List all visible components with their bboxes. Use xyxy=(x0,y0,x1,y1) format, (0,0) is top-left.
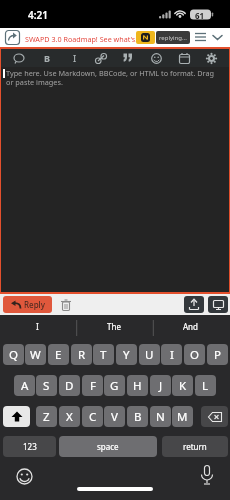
button[interactable]: R xyxy=(71,344,92,365)
button[interactable]: D xyxy=(59,375,80,396)
staticText: S xyxy=(43,378,50,394)
staticText: E xyxy=(55,347,62,363)
staticText: P xyxy=(214,347,221,363)
staticText: T xyxy=(100,347,107,363)
staticText: The xyxy=(107,321,121,332)
staticText: space xyxy=(97,441,119,452)
staticText: V xyxy=(111,409,118,425)
button[interactable] xyxy=(123,53,133,63)
button[interactable] xyxy=(200,465,214,486)
staticText: C xyxy=(89,409,97,425)
button[interactable] xyxy=(61,299,71,311)
staticText: N xyxy=(156,409,165,425)
staticText: G xyxy=(110,378,119,394)
button[interactable]: N xyxy=(150,406,171,427)
button[interactable] xyxy=(184,296,204,313)
staticText: M xyxy=(177,409,188,425)
button[interactable] xyxy=(5,30,20,45)
button[interactable]: space xyxy=(59,436,157,457)
staticText: X xyxy=(66,409,73,425)
button[interactable]: E xyxy=(48,344,69,365)
button[interactable] xyxy=(206,53,217,64)
staticText: replying... xyxy=(159,34,187,42)
staticText: D xyxy=(65,378,74,394)
button[interactable] xyxy=(201,406,228,427)
staticText: W xyxy=(30,347,41,363)
button[interactable]: I xyxy=(73,52,77,64)
staticText: U xyxy=(145,347,154,363)
staticText: Type here. Use Markdown, BBCode, or HTML… xyxy=(6,68,228,88)
button[interactable] xyxy=(179,53,190,64)
staticText: L xyxy=(202,378,209,394)
button[interactable] xyxy=(136,31,155,44)
staticText: Reply xyxy=(24,299,45,310)
button[interactable]: Z xyxy=(36,406,57,427)
staticText: And xyxy=(183,321,198,332)
button[interactable]: F xyxy=(82,375,103,396)
button[interactable]: K xyxy=(172,375,193,396)
button[interactable]: V xyxy=(104,406,125,427)
button[interactable]: L xyxy=(195,375,216,396)
button[interactable]: 123 xyxy=(3,436,56,457)
staticText: F xyxy=(90,378,96,394)
button[interactable]: P xyxy=(207,344,228,365)
button[interactable] xyxy=(95,53,107,64)
button[interactable]: Type here. Use Markdown, BBCode, or HTML… xyxy=(0,67,230,292)
button[interactable]: H xyxy=(127,375,148,396)
staticText: I xyxy=(36,321,39,332)
button[interactable]: U xyxy=(139,344,160,365)
button[interactable]: B xyxy=(127,406,148,427)
staticText: 4:21 xyxy=(28,8,48,22)
staticText: Y xyxy=(123,347,130,363)
button[interactable]: return xyxy=(162,436,228,457)
button[interactable]: replying... xyxy=(156,31,190,44)
button[interactable]: Reply xyxy=(3,296,52,313)
staticText: H xyxy=(133,378,142,394)
staticText: K xyxy=(179,378,187,394)
button[interactable] xyxy=(195,32,207,43)
button[interactable]: B xyxy=(44,52,50,64)
staticText: 61 xyxy=(195,10,205,21)
button[interactable]: A xyxy=(14,375,35,396)
button[interactable]: C xyxy=(82,406,103,427)
button[interactable] xyxy=(13,53,26,64)
staticText: R xyxy=(78,347,86,363)
button[interactable]: X xyxy=(59,406,80,427)
staticText: Z xyxy=(43,409,50,425)
staticText: A xyxy=(21,378,29,394)
staticText: return xyxy=(183,441,207,452)
staticText: Q xyxy=(9,347,18,363)
button[interactable] xyxy=(151,53,162,64)
button[interactable]: M xyxy=(172,406,193,427)
staticText: 123 xyxy=(23,441,37,452)
button[interactable] xyxy=(208,296,228,313)
button[interactable] xyxy=(16,468,33,485)
staticText: J xyxy=(159,378,163,394)
button[interactable] xyxy=(212,33,223,42)
button[interactable]: J xyxy=(150,375,171,396)
staticText: B xyxy=(134,409,142,425)
button[interactable]: S xyxy=(36,375,57,396)
button[interactable] xyxy=(3,406,30,427)
button[interactable]: W xyxy=(25,344,46,365)
button[interactable]: G xyxy=(104,375,125,396)
button[interactable]: O xyxy=(184,344,205,365)
button[interactable]: Y xyxy=(116,344,137,365)
button[interactable]: T xyxy=(93,344,114,365)
button[interactable]: SWAPD 3.0 Roadmap! See what's... xyxy=(25,34,142,44)
staticText: O xyxy=(190,347,199,363)
button[interactable]: Q xyxy=(3,344,24,365)
button[interactable]: I xyxy=(161,344,182,365)
staticText: I xyxy=(170,347,174,363)
